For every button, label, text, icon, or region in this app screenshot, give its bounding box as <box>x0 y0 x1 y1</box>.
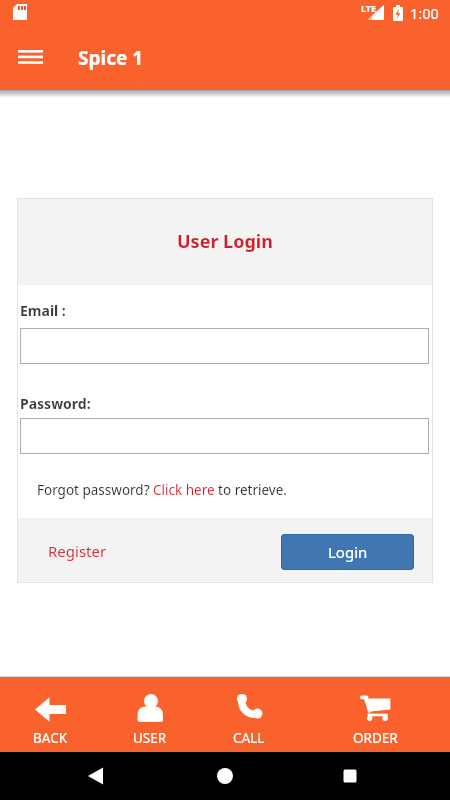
button[interactable]: Register <box>40 533 115 569</box>
button[interactable]: ORDER <box>300 677 450 752</box>
button[interactable]: USER <box>101 677 198 752</box>
button[interactable] <box>20 328 429 364</box>
button[interactable]: Forgot password? Click here to retrieve. <box>37 481 287 499</box>
staticText: ORDER <box>353 729 398 747</box>
staticText: CALL <box>233 729 265 747</box>
staticText: USER <box>133 729 167 747</box>
button[interactable]: BACK <box>0 677 101 752</box>
button[interactable] <box>300 752 450 800</box>
button[interactable] <box>8 40 52 74</box>
staticText: Register <box>48 541 107 561</box>
button[interactable] <box>0 752 150 800</box>
staticText: Login <box>328 542 368 562</box>
button[interactable]: Login <box>281 534 414 570</box>
button[interactable]: CALL <box>198 677 300 752</box>
staticText: Password: <box>20 394 91 413</box>
staticText: Spice 1 <box>78 45 144 71</box>
button[interactable] <box>20 418 429 454</box>
staticText: 1:00 <box>410 3 439 23</box>
staticText: LTE <box>361 2 377 14</box>
staticText: Email : <box>20 301 66 320</box>
staticText: User Login <box>177 229 273 254</box>
staticText: BACK <box>33 729 68 747</box>
button[interactable] <box>150 752 300 800</box>
